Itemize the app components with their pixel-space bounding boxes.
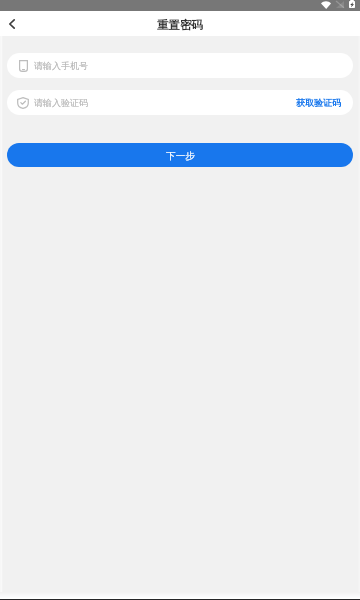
staticText: 重置密码 xyxy=(157,18,203,32)
staticText: 下一步 xyxy=(166,150,195,162)
button[interactable]: Back xyxy=(0,11,24,36)
button[interactable]: 获取验证码 xyxy=(7,90,353,115)
staticText: 请输入验证码 xyxy=(34,97,88,108)
staticText: 获取验证码 xyxy=(296,97,341,108)
staticText: 请输入手机号 xyxy=(34,60,88,71)
button[interactable]: 下一步 xyxy=(7,143,353,167)
